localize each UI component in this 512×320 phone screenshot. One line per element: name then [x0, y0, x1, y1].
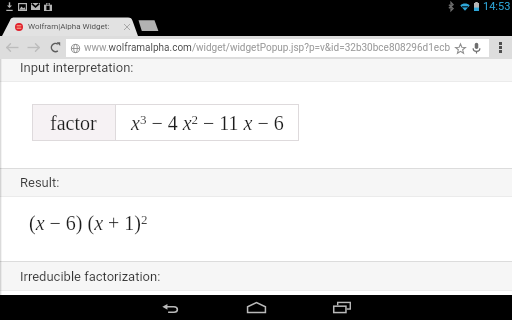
button[interactable]: Forward	[25, 36, 42, 59]
button[interactable]: More options	[489, 36, 512, 59]
button[interactable]: Back	[127, 295, 213, 320]
staticText: Input interpretation:	[20, 60, 134, 75]
staticText: Wolfram|Alpha Widget:	[28, 22, 110, 31]
staticText: 14:53	[483, 0, 511, 13]
button[interactable]: Recent apps	[299, 295, 385, 320]
staticText: factor	[50, 112, 97, 134]
staticText: Irreducible factorization:	[20, 269, 161, 284]
button[interactable]: Reload	[47, 36, 64, 59]
staticText: www.wolframalpha.com/widget/widgetPopup.…	[84, 42, 451, 54]
button[interactable]: Voice search	[470, 39, 483, 57]
staticText: Result:	[20, 175, 60, 190]
button[interactable]: Close tab	[121, 21, 132, 32]
staticText: (x − 6) (x + 1)2	[29, 212, 148, 234]
button[interactable]: Bookmark	[454, 39, 467, 57]
button[interactable]: www.wolframalpha.com/widget/widgetPopup.…	[66, 39, 489, 57]
button[interactable]: Back	[4, 36, 21, 59]
button[interactable]: Home	[213, 295, 299, 320]
staticText: x3 − 4 x2 − 11 x − 6	[131, 112, 284, 134]
